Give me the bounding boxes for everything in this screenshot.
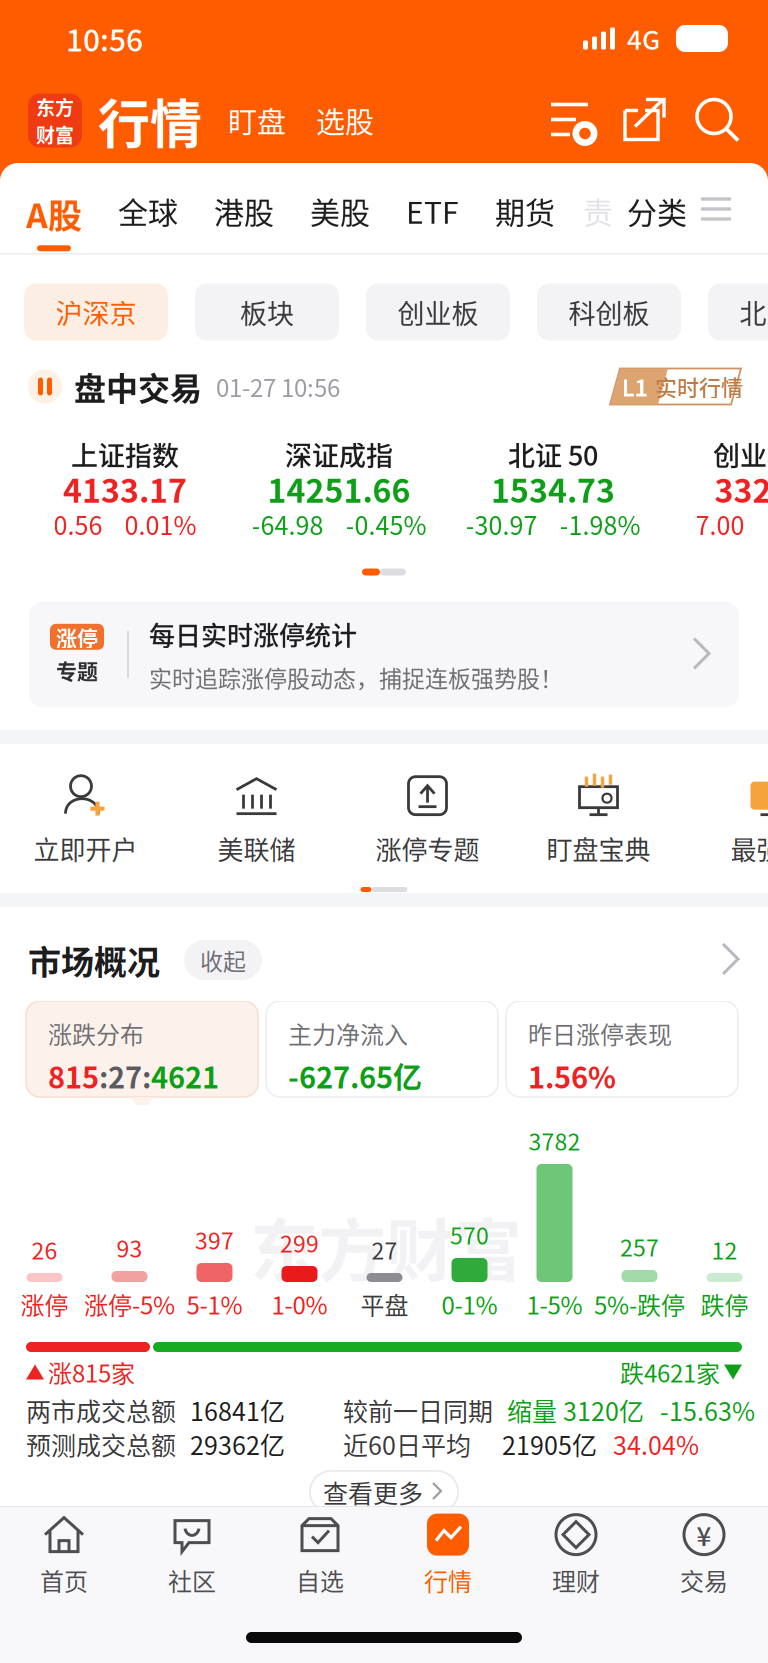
button[interactable]: All categories	[701, 189, 751, 223]
staticText: 分类	[627, 189, 687, 232]
staticText: A股	[26, 189, 82, 238]
button[interactable]: 北证 50	[446, 434, 660, 554]
staticText: 299	[280, 1226, 319, 1259]
button[interactable]: 立即开户	[0, 751, 171, 869]
staticText: 涨停	[20, 1287, 68, 1321]
staticText: 交易	[680, 1563, 728, 1597]
button[interactable]: 创业板	[366, 283, 510, 340]
staticText: 主力净流入	[288, 1016, 408, 1051]
staticText: 29362亿	[190, 1426, 285, 1462]
staticText: 570	[450, 1218, 489, 1251]
button[interactable]: 板块	[195, 283, 339, 340]
button[interactable]: 最强风	[684, 751, 768, 869]
staticText: 社区	[168, 1563, 216, 1597]
staticText: 理财	[552, 1563, 600, 1597]
button[interactable]: 美联储	[171, 751, 342, 869]
staticText: 深证成指	[285, 434, 393, 474]
staticText: 27	[371, 1233, 397, 1266]
button[interactable]: 查看更多	[310, 1471, 458, 1513]
staticText: 东方财富	[250, 1197, 522, 1295]
button[interactable]: 深证成指	[232, 434, 446, 554]
staticText: 立即开户	[33, 830, 137, 867]
button[interactable]: 北交所	[708, 283, 768, 340]
button[interactable]: 港股	[196, 189, 292, 232]
staticText: 美股	[310, 189, 370, 232]
staticText: 0.01%	[124, 506, 196, 542]
button[interactable]: A股	[0, 189, 100, 251]
staticText: 26	[31, 1233, 57, 1266]
staticText: 收起	[200, 943, 246, 977]
button[interactable]: 涨停	[29, 601, 739, 707]
staticText: ETF	[406, 189, 459, 232]
staticText: 5%-跌停	[594, 1287, 685, 1321]
staticText: 257	[620, 1230, 659, 1263]
button[interactable]: 分类	[613, 189, 701, 232]
staticText: 跌4621家	[620, 1355, 720, 1389]
staticText: 815	[48, 1055, 99, 1097]
button[interactable]: 行情	[384, 1507, 512, 1603]
button[interactable]: 自选	[256, 1507, 384, 1603]
staticText: 上证指数	[71, 434, 179, 474]
staticText: 跌停	[700, 1287, 748, 1321]
staticText: 沪深京	[55, 292, 136, 332]
staticText: 7.00	[695, 506, 744, 542]
button[interactable]: 沪深京	[24, 283, 168, 340]
staticText: 1534.73	[491, 466, 615, 512]
staticText: 每日实时涨停统计	[149, 615, 357, 653]
button[interactable]: More market data	[721, 942, 742, 978]
staticText: 昨日涨停表现	[528, 1016, 672, 1051]
staticText: 397	[195, 1223, 234, 1256]
staticText: 美联储	[217, 830, 295, 867]
button[interactable]: 科创板	[537, 283, 681, 340]
staticText: 港股	[214, 189, 274, 232]
staticText: 涨停	[56, 622, 98, 652]
button[interactable]: 涨跌分布	[26, 1001, 258, 1097]
button[interactable]: Share	[594, 97, 668, 143]
staticText: 预测成交总额	[26, 1426, 176, 1462]
button[interactable]: 昨日涨停表现	[506, 1001, 738, 1097]
staticText: 平盘	[360, 1287, 408, 1321]
staticText: 4621	[151, 1055, 219, 1097]
button[interactable]: Search	[668, 97, 742, 143]
button[interactable]: 社区	[128, 1507, 256, 1603]
staticText: 行情	[424, 1563, 472, 1597]
button[interactable]: Filter settings	[550, 98, 594, 142]
staticText: 34.04%	[613, 1426, 699, 1462]
staticText: 12	[711, 1233, 737, 1266]
staticText: 最强风	[730, 830, 768, 867]
staticText: 全球	[118, 189, 178, 232]
staticText: 1-5%	[526, 1287, 582, 1321]
button[interactable]: 盯盘宝典	[513, 751, 684, 869]
staticText: 01-27 10:56	[216, 369, 340, 404]
staticText: -0.45%	[345, 506, 426, 542]
staticText: 行情	[98, 83, 202, 158]
staticText: 责	[583, 189, 613, 232]
button[interactable]: 上证指数	[18, 434, 232, 554]
staticText: 科创板	[568, 292, 649, 332]
button[interactable]: 创业板指	[660, 434, 768, 554]
button[interactable]: 期货	[477, 189, 573, 232]
button[interactable]: 美股	[292, 189, 388, 232]
staticText: 期货	[495, 189, 555, 232]
staticText: 涨停专题	[375, 830, 479, 867]
button[interactable]: 收起	[160, 940, 262, 980]
staticText: 近60日平均	[343, 1426, 471, 1462]
staticText: 自选	[296, 1563, 344, 1597]
staticText: 0-1%	[441, 1287, 497, 1321]
button[interactable]: 涨停专题	[342, 751, 513, 869]
staticText: 实时行情	[655, 371, 743, 402]
button[interactable]: 选股	[288, 99, 374, 141]
staticText: 4G	[627, 20, 660, 57]
staticText: 涨跌分布	[48, 1016, 144, 1051]
button[interactable]: 全球	[100, 189, 196, 232]
staticText: 东方	[36, 93, 74, 120]
button[interactable]: 主力净流入	[266, 1001, 498, 1097]
button[interactable]: 首页	[0, 1507, 128, 1603]
button[interactable]: 盯盘	[202, 99, 288, 141]
staticText: 两市成交总额	[26, 1392, 176, 1428]
button[interactable]: ¥	[640, 1507, 768, 1603]
staticText: 北证 50	[508, 434, 598, 474]
button[interactable]: ETF	[388, 189, 477, 232]
button[interactable]: 理财	[512, 1507, 640, 1603]
